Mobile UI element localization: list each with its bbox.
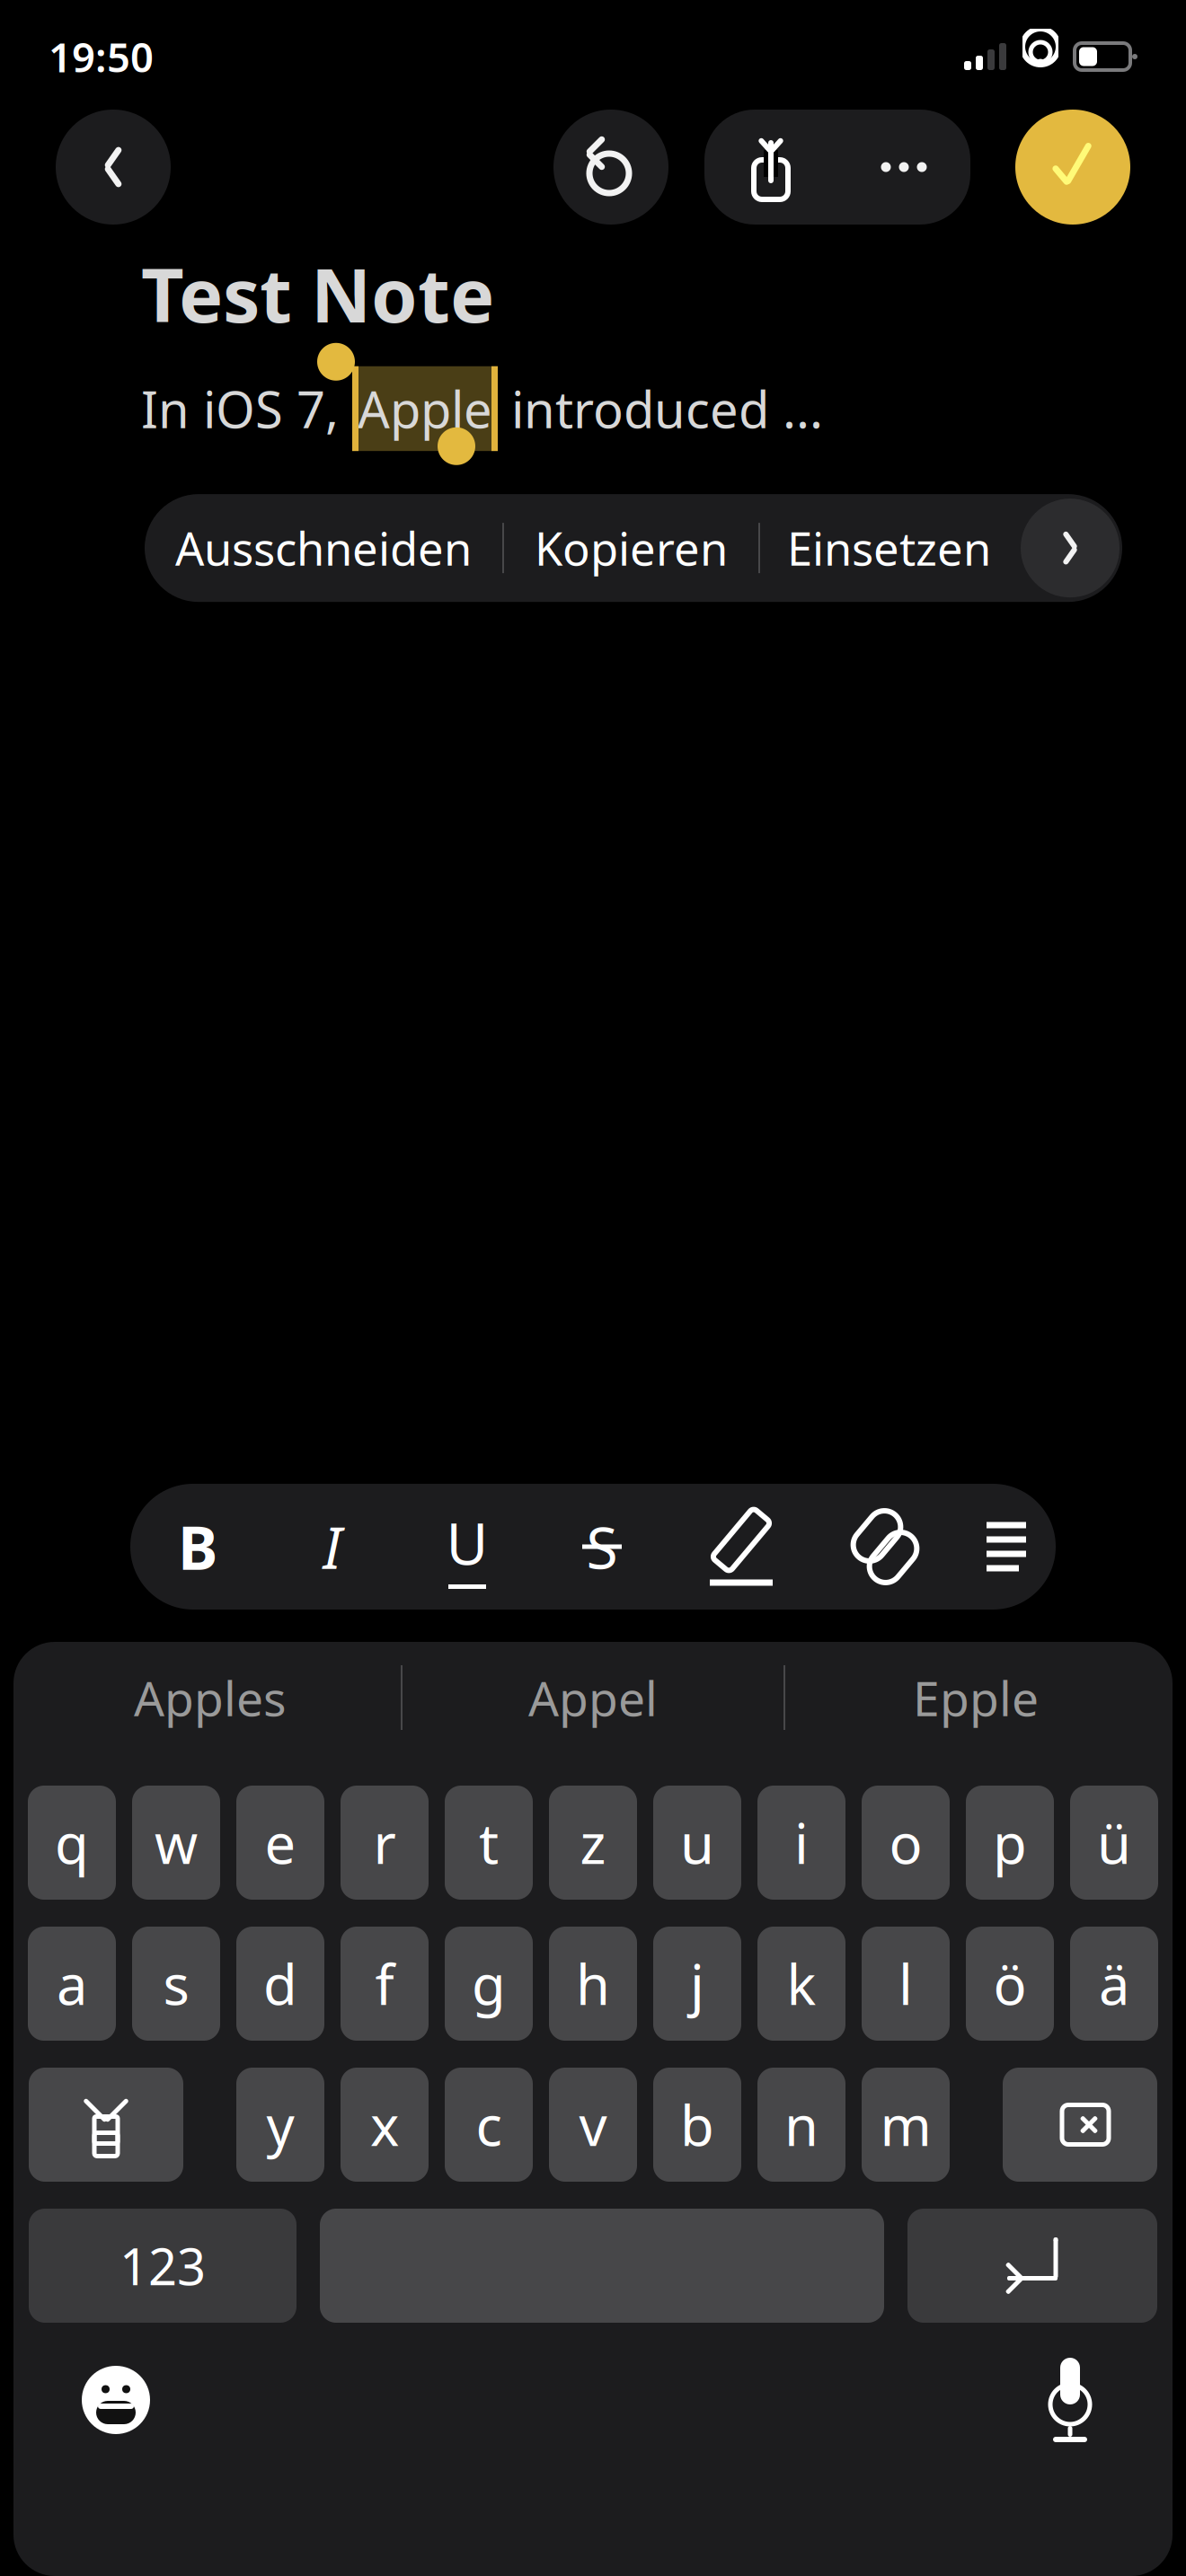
staticText: Einsetzen [787, 518, 991, 578]
staticText: ö [993, 1947, 1027, 2020]
staticText: Test Note [141, 244, 494, 343]
button[interactable]: Epple [785, 1642, 1166, 1753]
button[interactable]: d [236, 1927, 324, 2041]
button[interactable]: Lists [957, 1484, 1056, 1610]
staticText: Ausschneiden [175, 518, 472, 578]
button[interactable]: a [28, 1927, 116, 2041]
staticText: ä [1099, 1947, 1129, 2020]
staticText: k [787, 1947, 816, 2020]
button[interactable]: I [265, 1484, 400, 1610]
staticText: introduced ... [498, 375, 823, 442]
staticText: f [375, 1947, 394, 2020]
button[interactable]: x [341, 2068, 429, 2182]
staticText: Appel [528, 1666, 658, 1729]
button[interactable]: U [400, 1484, 535, 1610]
staticText: z [580, 1806, 606, 1879]
staticText: u [680, 1806, 714, 1879]
button[interactable]: Ausschneiden [145, 494, 502, 602]
staticText: y [266, 2088, 294, 2161]
button[interactable]: Back [56, 110, 171, 225]
button[interactable]: b [653, 2068, 741, 2182]
button[interactable]: B [130, 1484, 265, 1610]
staticText: B [178, 1507, 217, 1586]
staticText: h [576, 1947, 610, 2020]
button[interactable]: w [132, 1786, 220, 1900]
staticText: p [993, 1806, 1027, 1879]
button[interactable]: Delete [1003, 2068, 1157, 2182]
button[interactable]: Dictate [1016, 2346, 1124, 2454]
staticText: 123 [119, 2232, 206, 2299]
button[interactable]: Done [1015, 110, 1130, 225]
staticText: Epple [913, 1666, 1039, 1729]
button[interactable]: Highlight [669, 1484, 813, 1610]
button[interactable]: Appel [403, 1642, 783, 1753]
button[interactable]: t [445, 1786, 533, 1900]
button[interactable]: f [341, 1927, 429, 2041]
staticText: s [163, 1947, 189, 2020]
staticText: r [373, 1806, 396, 1879]
button[interactable]: c [445, 2068, 533, 2182]
button[interactable]: S [535, 1484, 669, 1610]
staticText: Apple [358, 375, 492, 442]
staticText: Apples [134, 1666, 287, 1729]
staticText: In iOS 7, [141, 375, 352, 442]
button[interactable]: g [445, 1927, 533, 2041]
button[interactable]: Return [907, 2209, 1157, 2323]
staticText: t [479, 1806, 499, 1879]
button[interactable]: q [28, 1786, 116, 1900]
button[interactable]: Einsetzen [760, 494, 1018, 602]
button[interactable]: r [341, 1786, 429, 1900]
button[interactable]: y [236, 2068, 324, 2182]
button[interactable]: o [862, 1786, 950, 1900]
staticText: U [446, 1504, 488, 1581]
button[interactable]: ö [966, 1927, 1054, 2041]
staticText: n [784, 2088, 819, 2161]
button[interactable]: l [862, 1927, 950, 2041]
staticText: o [889, 1806, 922, 1879]
button[interactable]: j [653, 1927, 741, 2041]
button[interactable]: e [236, 1786, 324, 1900]
button[interactable]: p [966, 1786, 1054, 1900]
button[interactable]: Kopieren [504, 494, 758, 602]
staticText: 19:50 [49, 30, 154, 84]
staticText: S [586, 1509, 618, 1585]
button[interactable]: v [549, 2068, 637, 2182]
button[interactable]: More actions [1018, 494, 1122, 602]
button[interactable]: m [862, 2068, 950, 2182]
button[interactable]: n [757, 2068, 845, 2182]
button[interactable]: i [757, 1786, 845, 1900]
button[interactable]: Undo [553, 110, 668, 225]
button[interactable]: Apples [20, 1642, 401, 1753]
button[interactable]: Emoji [62, 2346, 170, 2454]
staticText: ü [1097, 1806, 1131, 1879]
button[interactable]: h [549, 1927, 637, 2041]
button[interactable]: Shift [29, 2068, 183, 2182]
staticText: g [472, 1947, 506, 2020]
button[interactable]: z [549, 1786, 637, 1900]
staticText: v [579, 2088, 607, 2161]
staticText: i [794, 1806, 809, 1879]
button[interactable]: More [837, 110, 970, 225]
staticText: Kopieren [535, 518, 728, 578]
button[interactable]: Add link [813, 1484, 957, 1610]
staticText: j [690, 1947, 704, 2020]
staticText: m [880, 2088, 931, 2161]
staticText: w [155, 1806, 198, 1879]
button[interactable]: ü [1070, 1786, 1158, 1900]
button[interactable]: 123 [29, 2209, 296, 2323]
staticText: d [263, 1947, 297, 2020]
staticText: x [370, 2088, 399, 2161]
staticText: l [898, 1947, 913, 2020]
staticText: q [55, 1806, 89, 1879]
staticText: e [265, 1806, 296, 1879]
staticText: b [680, 2088, 714, 2161]
button[interactable]: Share [704, 110, 837, 225]
button[interactable]: k [757, 1927, 845, 2041]
button[interactable]: u [653, 1786, 741, 1900]
staticText: a [57, 1947, 87, 2020]
button[interactable]: ä [1070, 1927, 1158, 2041]
staticText: I [323, 1509, 342, 1585]
button[interactable]: s [132, 1927, 220, 2041]
staticText: c [476, 2088, 502, 2161]
